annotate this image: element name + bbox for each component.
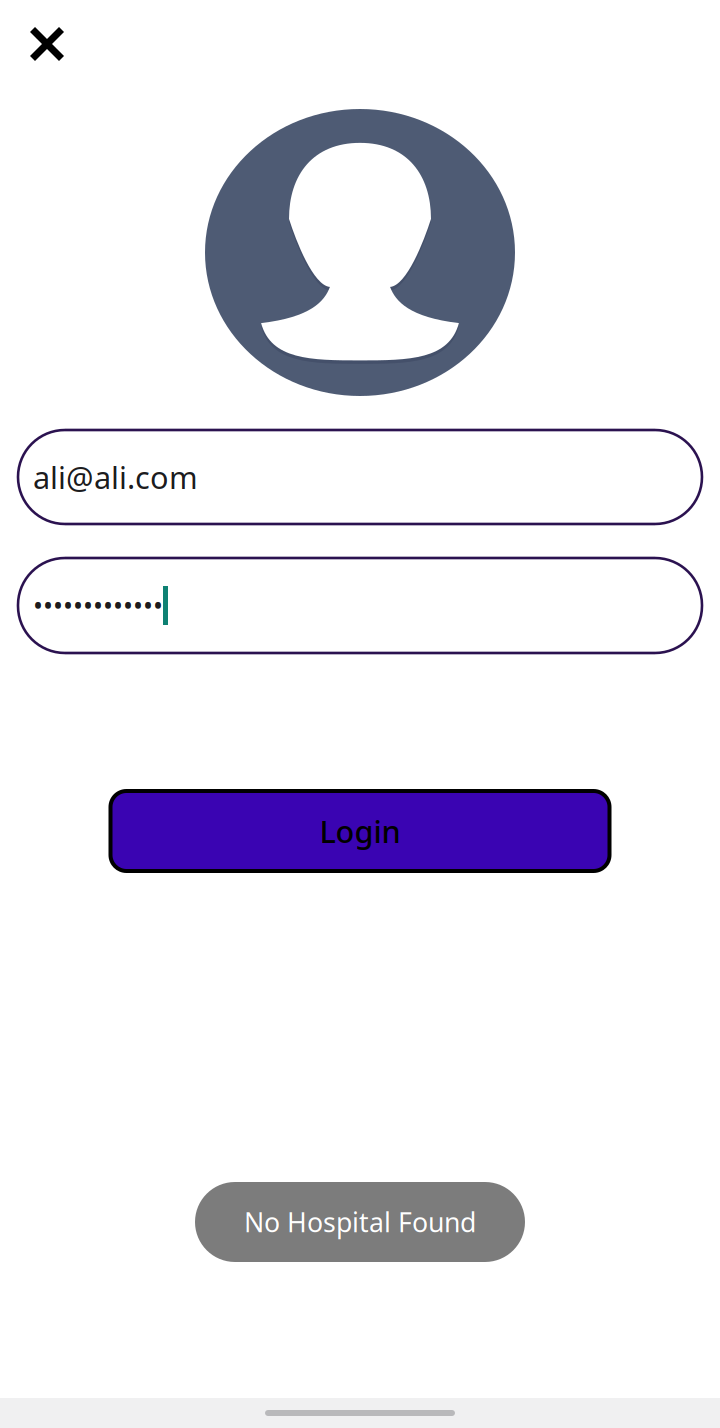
button[interactable]: Close: [0, 0, 94, 85]
staticText: •••••••••••••: [33, 588, 163, 623]
staticText: Login: [319, 811, 400, 851]
staticText: No Hospital Found: [244, 1204, 476, 1240]
button[interactable]: Login: [110, 791, 609, 871]
staticText: ali@ali.com: [33, 457, 198, 497]
